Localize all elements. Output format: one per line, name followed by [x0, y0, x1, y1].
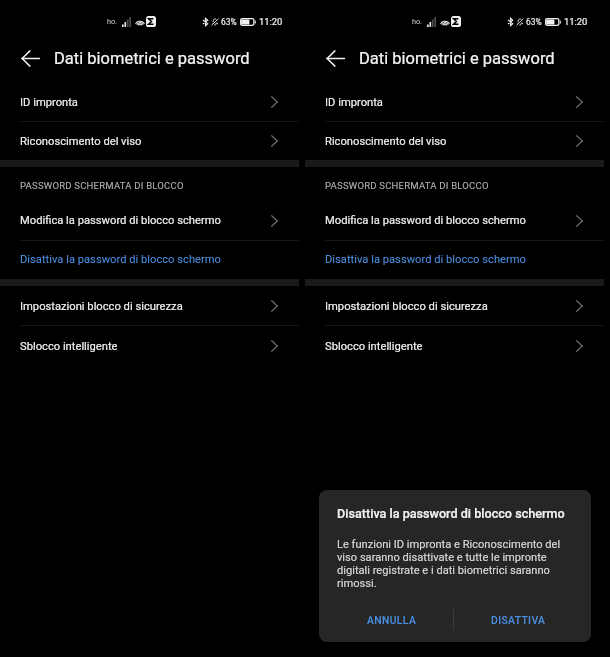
staticText: ho. — [412, 17, 422, 25]
button[interactable]: Riconoscimento del viso — [305, 122, 604, 160]
staticText: ID impronta — [325, 96, 383, 109]
staticText: 11:20 — [259, 16, 283, 27]
staticText: Disattiva la password di blocco schermo — [20, 253, 221, 266]
staticText: Riconoscimento del viso — [20, 135, 142, 148]
button[interactable]: Modifica la password di blocco schermo — [305, 201, 604, 240]
staticText: Sblocco intelligente — [20, 340, 118, 353]
staticText: 63% — [526, 17, 542, 27]
staticText: Impostazioni blocco di sicurezza — [20, 300, 183, 313]
button[interactable]: ANNULLA — [353, 606, 430, 634]
button[interactable]: ID impronta — [0, 82, 299, 122]
staticText: Dati biometrici e password — [54, 49, 250, 68]
button[interactable]: Riconoscimento del viso — [0, 122, 299, 160]
staticText: Modifica la password di blocco schermo — [20, 214, 221, 227]
staticText: PASSWORD SCHERMATA DI BLOCCO — [20, 180, 184, 191]
staticText: Sblocco intelligente — [325, 340, 423, 353]
staticText: Le funzioni ID impronta e Riconoscimento… — [337, 538, 565, 590]
staticText: ANNULLA — [367, 614, 417, 626]
button[interactable]: Sblocco intelligente — [305, 326, 604, 366]
staticText: PASSWORD SCHERMATA DI BLOCCO — [325, 180, 489, 191]
button[interactable]: DISATTIVA — [479, 606, 557, 634]
button[interactable]: ID impronta — [305, 82, 604, 122]
staticText: 11:20 — [564, 16, 588, 27]
staticText: Disattiva la password di blocco schermo — [337, 506, 565, 521]
staticText: ho. — [107, 17, 117, 25]
button[interactable]: Modifica la password di blocco schermo — [0, 201, 299, 240]
button[interactable]: Back — [326, 49, 345, 68]
button[interactable]: Impostazioni blocco di sicurezza — [305, 286, 604, 326]
staticText: Disattiva la password di blocco schermo — [325, 253, 526, 266]
staticText: Modifica la password di blocco schermo — [325, 214, 526, 227]
staticText: ID impronta — [20, 96, 78, 109]
button[interactable]: Sblocco intelligente — [0, 326, 299, 366]
button[interactable]: Back — [21, 49, 40, 68]
staticText: Riconoscimento del viso — [325, 135, 447, 148]
staticText: 63% — [221, 17, 237, 27]
button[interactable]: Disattiva la password di blocco schermo — [305, 240, 604, 279]
staticText: DISATTIVA — [491, 614, 546, 626]
button[interactable]: Disattiva la password di blocco schermo — [0, 240, 299, 279]
button[interactable]: Impostazioni blocco di sicurezza — [0, 286, 299, 326]
staticText: Dati biometrici e password — [359, 49, 555, 68]
staticText: Impostazioni blocco di sicurezza — [325, 300, 488, 313]
